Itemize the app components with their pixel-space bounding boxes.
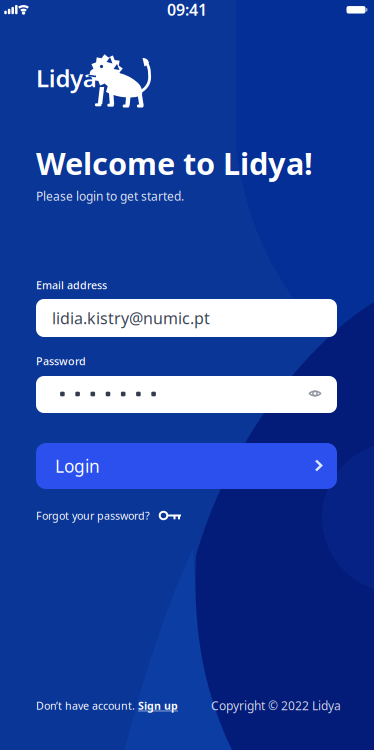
button[interactable]: Show password — [301, 379, 329, 407]
staticText: Sign up — [138, 698, 178, 713]
staticText: Please login to get started. — [36, 188, 184, 204]
staticText: Copyright © 2022 Lidya — [211, 697, 341, 713]
staticText: lidia.kistry@numic.pt — [52, 307, 210, 329]
staticText: Forgot your password? — [36, 508, 150, 523]
staticText: Don’t have account. — [36, 698, 138, 713]
staticText: Welcome to Lidya! — [36, 143, 313, 183]
button[interactable]: Forgot your password? — [36, 508, 182, 523]
staticText: 09:41 — [167, 0, 207, 20]
staticText: Password — [36, 354, 86, 368]
button[interactable]: Login — [36, 443, 337, 489]
staticText: Email address — [36, 278, 107, 292]
staticText: Lidya — [36, 62, 97, 94]
staticText: Login — [55, 454, 100, 477]
button[interactable]: Sign up — [138, 698, 178, 713]
